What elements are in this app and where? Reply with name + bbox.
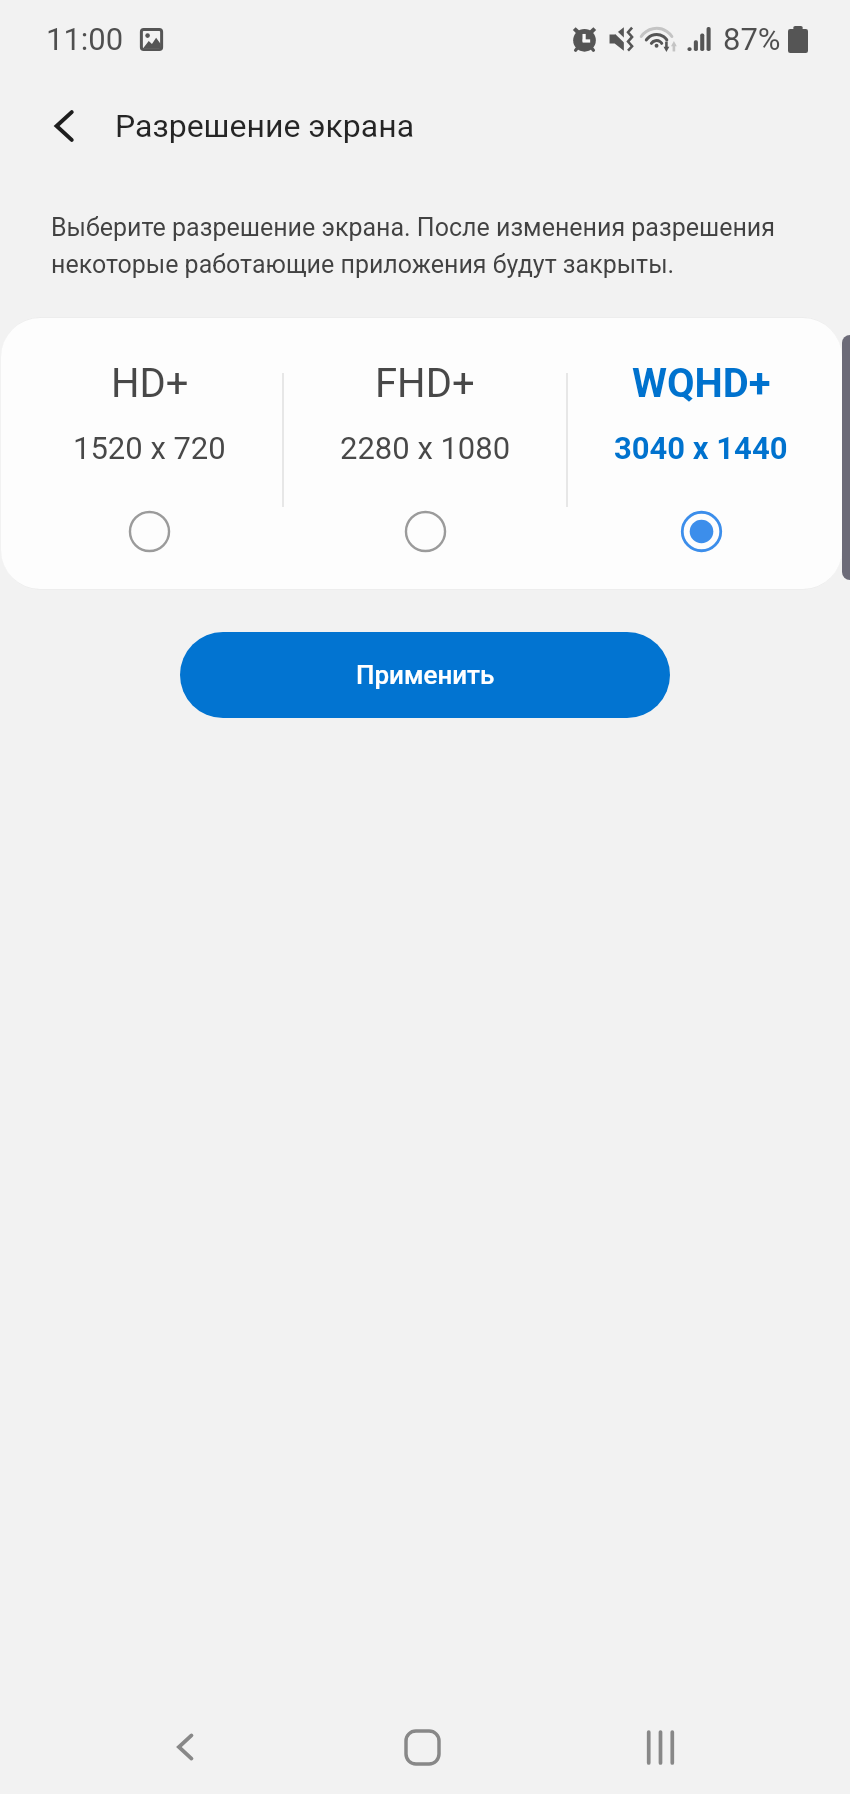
staticText: 11:00 — [46, 21, 124, 57]
button[interactable]: Home — [384, 1709, 460, 1785]
staticText: WQHD+ — [632, 360, 771, 407]
staticText: FHD+ — [375, 360, 475, 407]
staticText: 2280 x 1080 — [340, 430, 511, 466]
button[interactable]: Применить — [180, 632, 670, 718]
staticText: 1520 x 720 — [73, 430, 226, 466]
staticText: 87% — [723, 21, 781, 57]
staticText: HD+ — [111, 360, 189, 407]
staticText: Применить — [356, 660, 495, 690]
staticText: 3040 x 1440 — [614, 430, 788, 466]
button[interactable]: WQHD+ — [563, 317, 839, 590]
button[interactable]: HD+ — [12, 317, 287, 590]
staticText: Разрешение экрана — [115, 107, 415, 145]
staticText: Выберите разрешение экрана. После измене… — [51, 213, 781, 279]
button[interactable]: Recent apps — [622, 1709, 698, 1785]
button[interactable]: Back — [30, 91, 100, 161]
button[interactable]: FHD+ — [287, 317, 563, 590]
button[interactable]: Back — [147, 1709, 223, 1785]
